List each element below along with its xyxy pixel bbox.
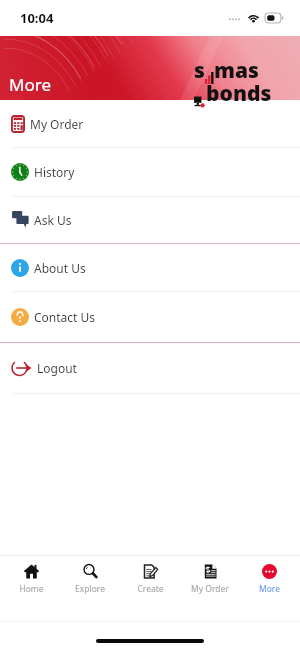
- other: Explore: [83, 564, 98, 579]
- button[interactable]: Logout: [0, 343, 300, 393]
- other: Create: [143, 564, 158, 579]
- button[interactable]: Explore: [61, 556, 119, 621]
- staticText: About Us: [34, 260, 86, 276]
- button[interactable]: Create: [121, 556, 179, 621]
- button[interactable]: Ask Us: [0, 197, 300, 243]
- staticText: Explore: [75, 583, 105, 595]
- other: My Order: [203, 564, 218, 579]
- button[interactable]: More: [240, 556, 298, 621]
- staticText: mas: [214, 56, 259, 85]
- other: More: [262, 564, 277, 579]
- staticText: History: [34, 164, 75, 180]
- button[interactable]: My Order: [181, 556, 239, 621]
- staticText: More: [259, 583, 280, 595]
- staticText: My Order: [191, 583, 229, 595]
- staticText: bonds: [206, 79, 272, 108]
- staticText: Create: [137, 583, 164, 595]
- staticText: More: [9, 73, 51, 96]
- staticText: Home: [19, 583, 44, 595]
- staticText: Ask Us: [34, 212, 72, 228]
- staticText: s: [194, 56, 205, 85]
- button[interactable]: My Order: [0, 100, 300, 147]
- staticText: Logout: [37, 360, 77, 376]
- staticText: Contact Us: [34, 309, 96, 325]
- other: Home: [24, 564, 39, 579]
- button[interactable]: History: [0, 148, 300, 196]
- staticText: My Order: [30, 116, 84, 132]
- button[interactable]: About Us: [0, 244, 300, 291]
- button[interactable]: Contact Us: [0, 292, 300, 342]
- staticText: 10:04: [20, 9, 54, 27]
- button[interactable]: Home: [2, 556, 60, 621]
